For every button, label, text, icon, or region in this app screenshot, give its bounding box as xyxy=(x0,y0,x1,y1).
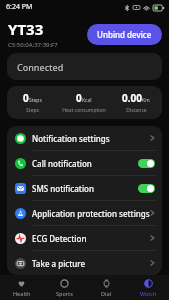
button[interactable]: Application protection settings xyxy=(7,201,162,225)
staticText: ECG Detection xyxy=(32,233,150,244)
button[interactable]: Toggle Call notification xyxy=(138,159,155,168)
staticText: Dial xyxy=(101,290,112,297)
staticText: Take a picture xyxy=(32,258,150,269)
staticText: Distance xyxy=(126,107,147,114)
staticText: 0 xyxy=(23,91,29,105)
staticText: Heat consumption xyxy=(62,107,106,114)
staticText: Health xyxy=(13,290,31,297)
staticText: Sports xyxy=(56,290,73,297)
button[interactable]: Toggle SMS notification xyxy=(138,184,155,193)
button[interactable]: Notification settings xyxy=(7,126,162,150)
staticText: SMS notification xyxy=(32,183,138,194)
staticText: Steps xyxy=(29,97,42,104)
button[interactable]: Dial xyxy=(85,276,127,300)
button[interactable]: ECG Detection xyxy=(7,226,162,250)
staticText: Km xyxy=(142,97,150,104)
staticText: Steps xyxy=(26,107,39,114)
staticText: Unbind device xyxy=(97,29,152,40)
button[interactable]: Sports xyxy=(43,276,85,300)
button[interactable]: Call notification xyxy=(7,151,162,175)
staticText: Application protection settings xyxy=(32,208,150,219)
staticText: Call notification xyxy=(32,158,138,169)
staticText: YT33 xyxy=(8,19,44,39)
staticText: 0 xyxy=(76,91,82,105)
staticText: Notification settings xyxy=(32,133,150,144)
button[interactable]: SMS notification xyxy=(7,176,162,200)
staticText: Connected xyxy=(17,61,64,73)
staticText: 6:24 PM xyxy=(6,2,33,12)
button[interactable]: Connected xyxy=(7,53,162,80)
button[interactable]: Take a picture xyxy=(7,251,162,275)
button[interactable]: Health xyxy=(0,276,43,300)
staticText: 0.00 xyxy=(122,91,142,105)
staticText: Kcal xyxy=(82,97,92,104)
button[interactable]: Watch xyxy=(127,276,169,300)
staticText: C5:50:0A:37:39:F7 xyxy=(8,41,58,49)
staticText: Watch xyxy=(140,290,157,297)
button[interactable]: Unbind device xyxy=(87,24,162,45)
